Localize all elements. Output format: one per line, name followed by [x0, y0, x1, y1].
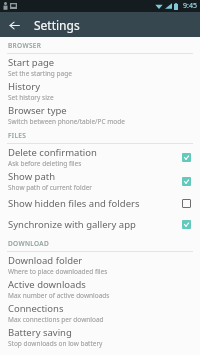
button[interactable]: Active downloads	[0, 277, 200, 301]
button[interactable]: Download folder	[0, 253, 200, 277]
button[interactable]: Connections	[0, 301, 200, 325]
staticText: Show path of current folder	[8, 183, 93, 192]
staticText: Switch between phone/table/PC mode	[8, 117, 125, 126]
staticText: BROWSER	[8, 41, 42, 50]
staticText: Set the starting page	[8, 69, 72, 78]
staticText: Max connections per download	[8, 315, 104, 324]
staticText: DOWNLOAD	[8, 239, 50, 248]
button[interactable]: Show path	[0, 169, 200, 193]
button[interactable]: Battery saving	[0, 325, 200, 349]
button[interactable]: Back	[4, 15, 24, 35]
staticText: History	[8, 80, 40, 93]
button[interactable]: Browser type	[0, 103, 200, 127]
staticText: Delete confirmation	[8, 146, 97, 159]
staticText: Synchronize with gallery app	[8, 218, 136, 231]
staticText: 9:45	[183, 1, 197, 11]
staticText: Stop downloads on low battery	[8, 339, 103, 348]
staticText: Ask before deleting files	[8, 159, 82, 168]
staticText: Download folder	[8, 254, 83, 267]
button[interactable]: History	[0, 79, 200, 103]
button[interactable]: Start page	[0, 55, 200, 79]
staticText: Settings	[34, 17, 80, 33]
button[interactable]: Delete confirmation	[0, 145, 200, 169]
staticText: Battery saving	[8, 326, 72, 339]
staticText: Set history size	[8, 93, 54, 102]
staticText: Connections	[8, 302, 64, 315]
staticText: Active downloads	[8, 278, 86, 291]
staticText: Max number of active downloads	[8, 291, 110, 300]
staticText: Browser type	[8, 104, 67, 117]
staticText: Start page	[8, 56, 55, 69]
button[interactable]: Synchronize with gallery app	[0, 214, 200, 235]
staticText: FILES	[8, 131, 27, 140]
staticText: Show path	[8, 170, 56, 183]
button[interactable]: Show hidden files and folders	[0, 193, 200, 214]
staticText: Where to place downloaded files	[8, 267, 108, 276]
staticText: Show hidden files and folders	[8, 197, 140, 210]
